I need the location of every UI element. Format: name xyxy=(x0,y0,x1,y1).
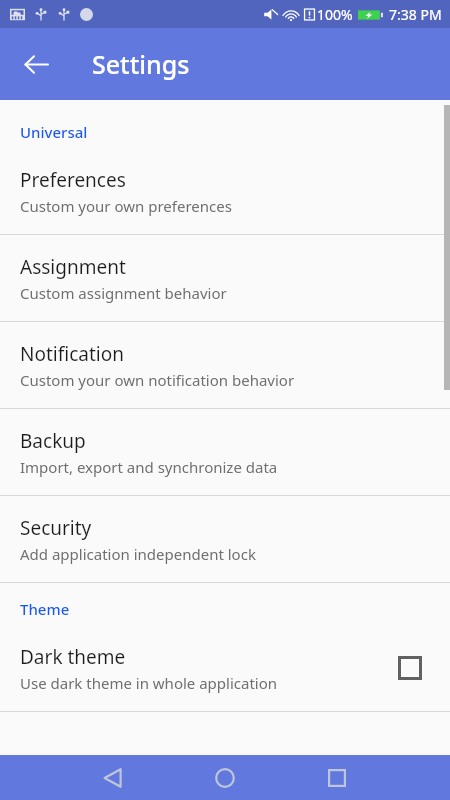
staticText: Assignment xyxy=(20,254,126,280)
staticText: Custom assignment behavior xyxy=(20,283,227,303)
staticText: Security xyxy=(20,515,92,541)
button[interactable]: Assignment xyxy=(0,235,450,321)
staticText: Dark theme xyxy=(20,644,126,670)
staticText: Add application independent lock xyxy=(20,544,256,564)
button[interactable]: Back xyxy=(12,40,60,88)
staticText: Settings xyxy=(92,47,190,81)
staticText: Custom your own notification behavior xyxy=(20,370,295,390)
staticText: Theme xyxy=(20,599,70,619)
staticText: 100% xyxy=(317,5,353,24)
staticText: Backup xyxy=(20,428,86,454)
staticText: Universal xyxy=(20,122,88,142)
button[interactable]: Backup xyxy=(0,409,450,495)
button[interactable]: Back xyxy=(90,755,136,800)
staticText: Import, export and synchronize data xyxy=(20,457,278,477)
staticText: Preferences xyxy=(20,167,126,193)
button[interactable]: Notification xyxy=(0,322,450,408)
button[interactable]: Dark theme toggle xyxy=(390,648,430,688)
button[interactable]: Recent apps xyxy=(314,755,360,800)
button[interactable]: Home xyxy=(202,755,248,800)
button[interactable]: Dark theme xyxy=(0,625,450,711)
staticText: Use dark theme in whole application xyxy=(20,673,278,693)
staticText: Custom your own preferences xyxy=(20,196,232,216)
staticText: Notification xyxy=(20,341,124,367)
staticText: 7:38 PM xyxy=(389,5,442,24)
button[interactable]: Security xyxy=(0,496,450,582)
button[interactable]: Preferences xyxy=(0,148,450,234)
